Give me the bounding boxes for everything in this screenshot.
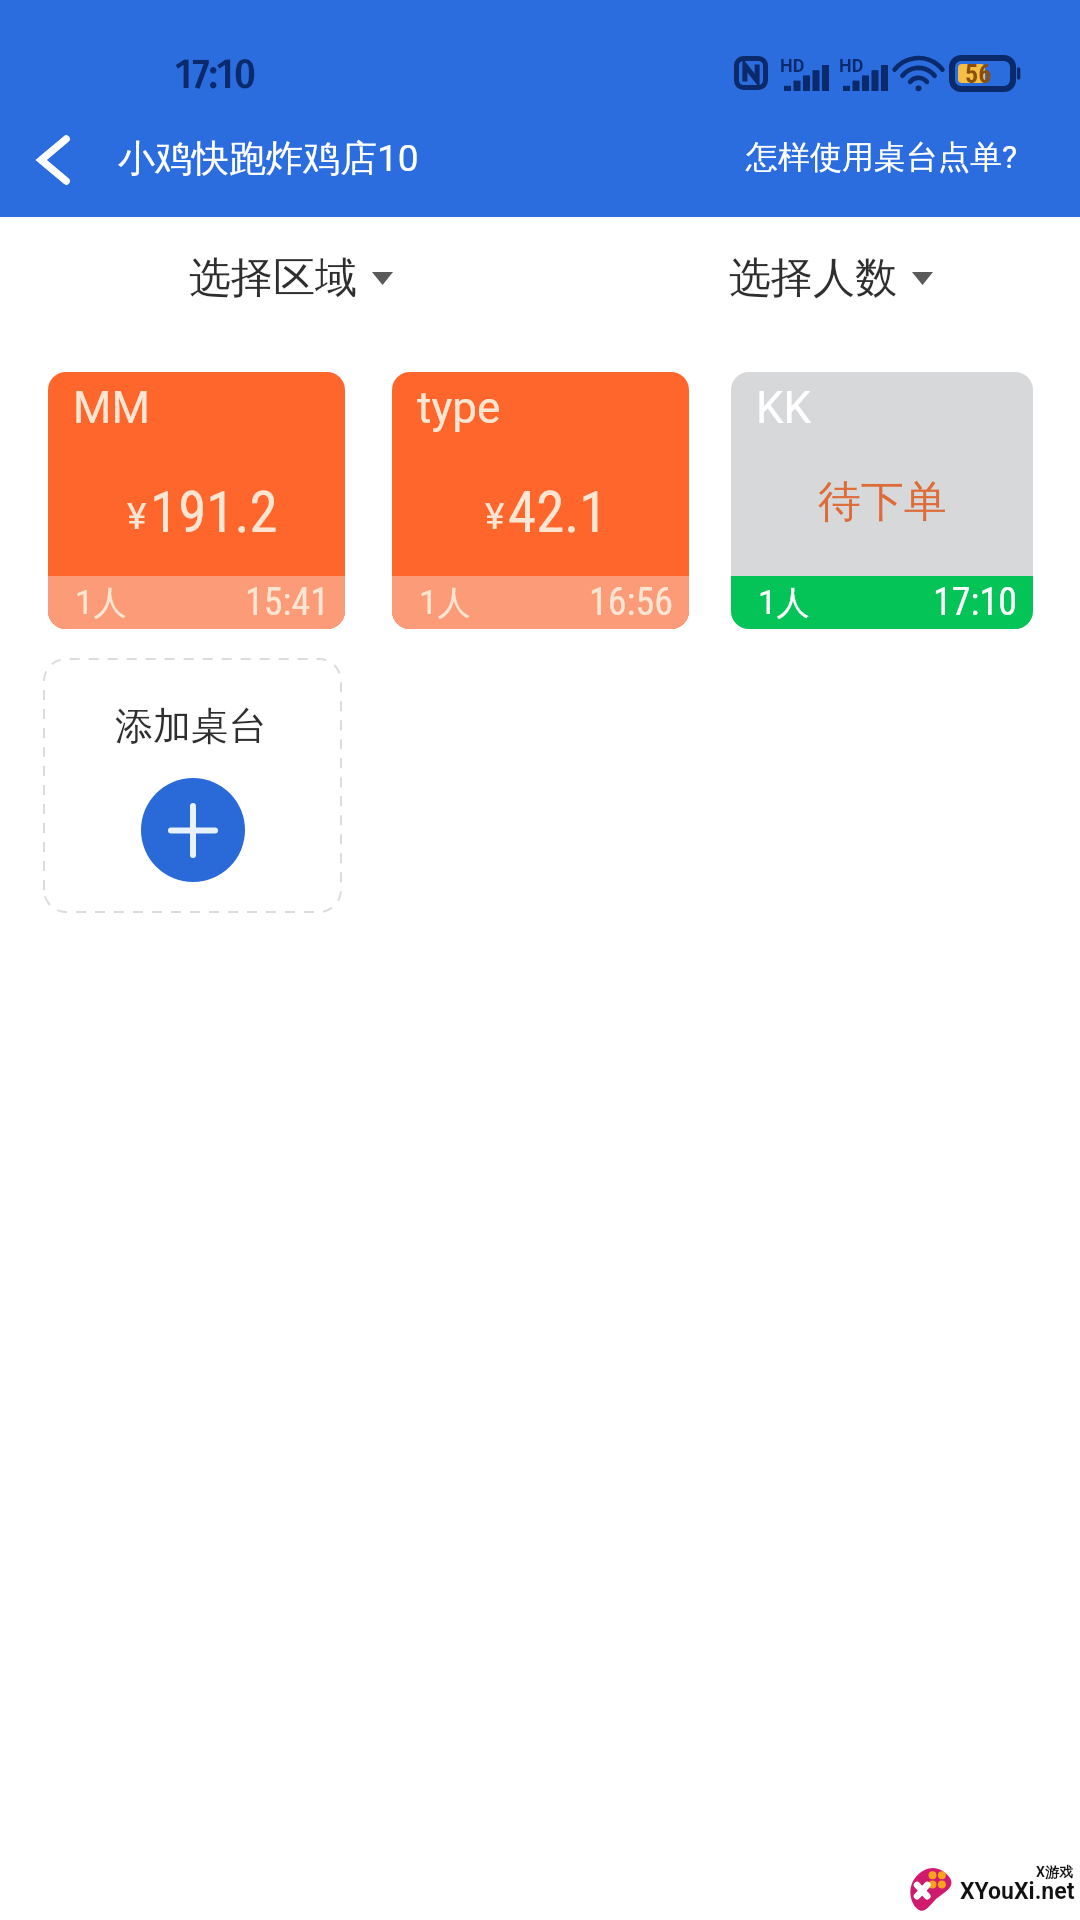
staticText: MM [73, 382, 150, 434]
staticText: 17:10 [175, 49, 257, 99]
button[interactable]: 添加桌台 [43, 658, 342, 913]
staticText: 191.2 [150, 479, 278, 546]
staticText: KK [756, 382, 812, 434]
staticText: 17:10 [933, 580, 1017, 625]
button[interactable]: Back [8, 110, 100, 210]
staticText: 选择人数 [729, 252, 897, 305]
staticText: XYouXi.net [960, 1878, 1075, 1905]
staticText: 待下单 [818, 475, 947, 529]
button[interactable]: 怎样使用桌台点单? [722, 124, 1042, 190]
button[interactable]: MM [48, 372, 345, 629]
button[interactable]: 选择区域 [181, 244, 401, 313]
staticText: 1人 [75, 582, 127, 624]
staticText: ¥ [485, 495, 505, 538]
staticText: 1人 [419, 582, 471, 624]
staticText: 56 [965, 59, 992, 89]
staticText: 小鸡快跑炸鸡店10 [118, 135, 419, 182]
staticText: HD [839, 55, 864, 76]
button[interactable]: Add table [141, 778, 245, 882]
staticText: type [417, 382, 501, 434]
button[interactable]: KK [731, 372, 1033, 629]
staticText: 添加桌台 [115, 702, 267, 750]
staticText: 16:56 [589, 580, 673, 625]
staticText: 1人 [758, 582, 810, 624]
staticText: 42.1 [508, 479, 608, 546]
staticText: 怎样使用桌台点单? [746, 137, 1018, 177]
button[interactable]: type [392, 372, 689, 629]
staticText: 15:41 [245, 580, 329, 625]
staticText: 选择区域 [189, 252, 357, 305]
button[interactable]: 选择人数 [721, 244, 941, 313]
staticText: HD [780, 55, 805, 76]
staticText: ¥ [127, 495, 147, 538]
staticText: X游戏 [1036, 1864, 1073, 1882]
